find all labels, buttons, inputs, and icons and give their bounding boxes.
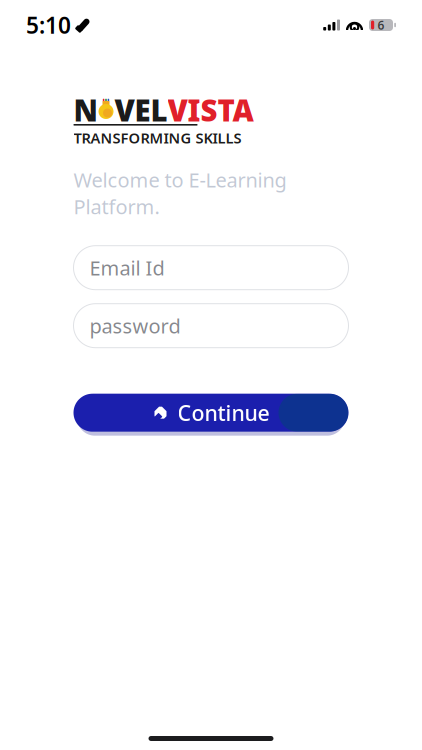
button[interactable]: Continue	[73, 391, 348, 435]
button[interactable]: Email Id	[73, 246, 348, 290]
staticText: VEL	[114, 90, 167, 129]
staticText: Email Id	[89, 254, 164, 281]
staticText: Continue	[177, 398, 269, 427]
staticText: N	[73, 90, 97, 129]
staticText: VISTA	[167, 90, 253, 129]
staticText: 5:10	[26, 10, 71, 40]
button[interactable]: password	[73, 304, 348, 348]
staticText: TRANSFORMING SKILLS	[73, 128, 241, 148]
staticText: 6	[377, 17, 384, 33]
staticText: password	[89, 312, 180, 339]
staticText: Welcome to E-Learning Platform.	[73, 167, 286, 220]
